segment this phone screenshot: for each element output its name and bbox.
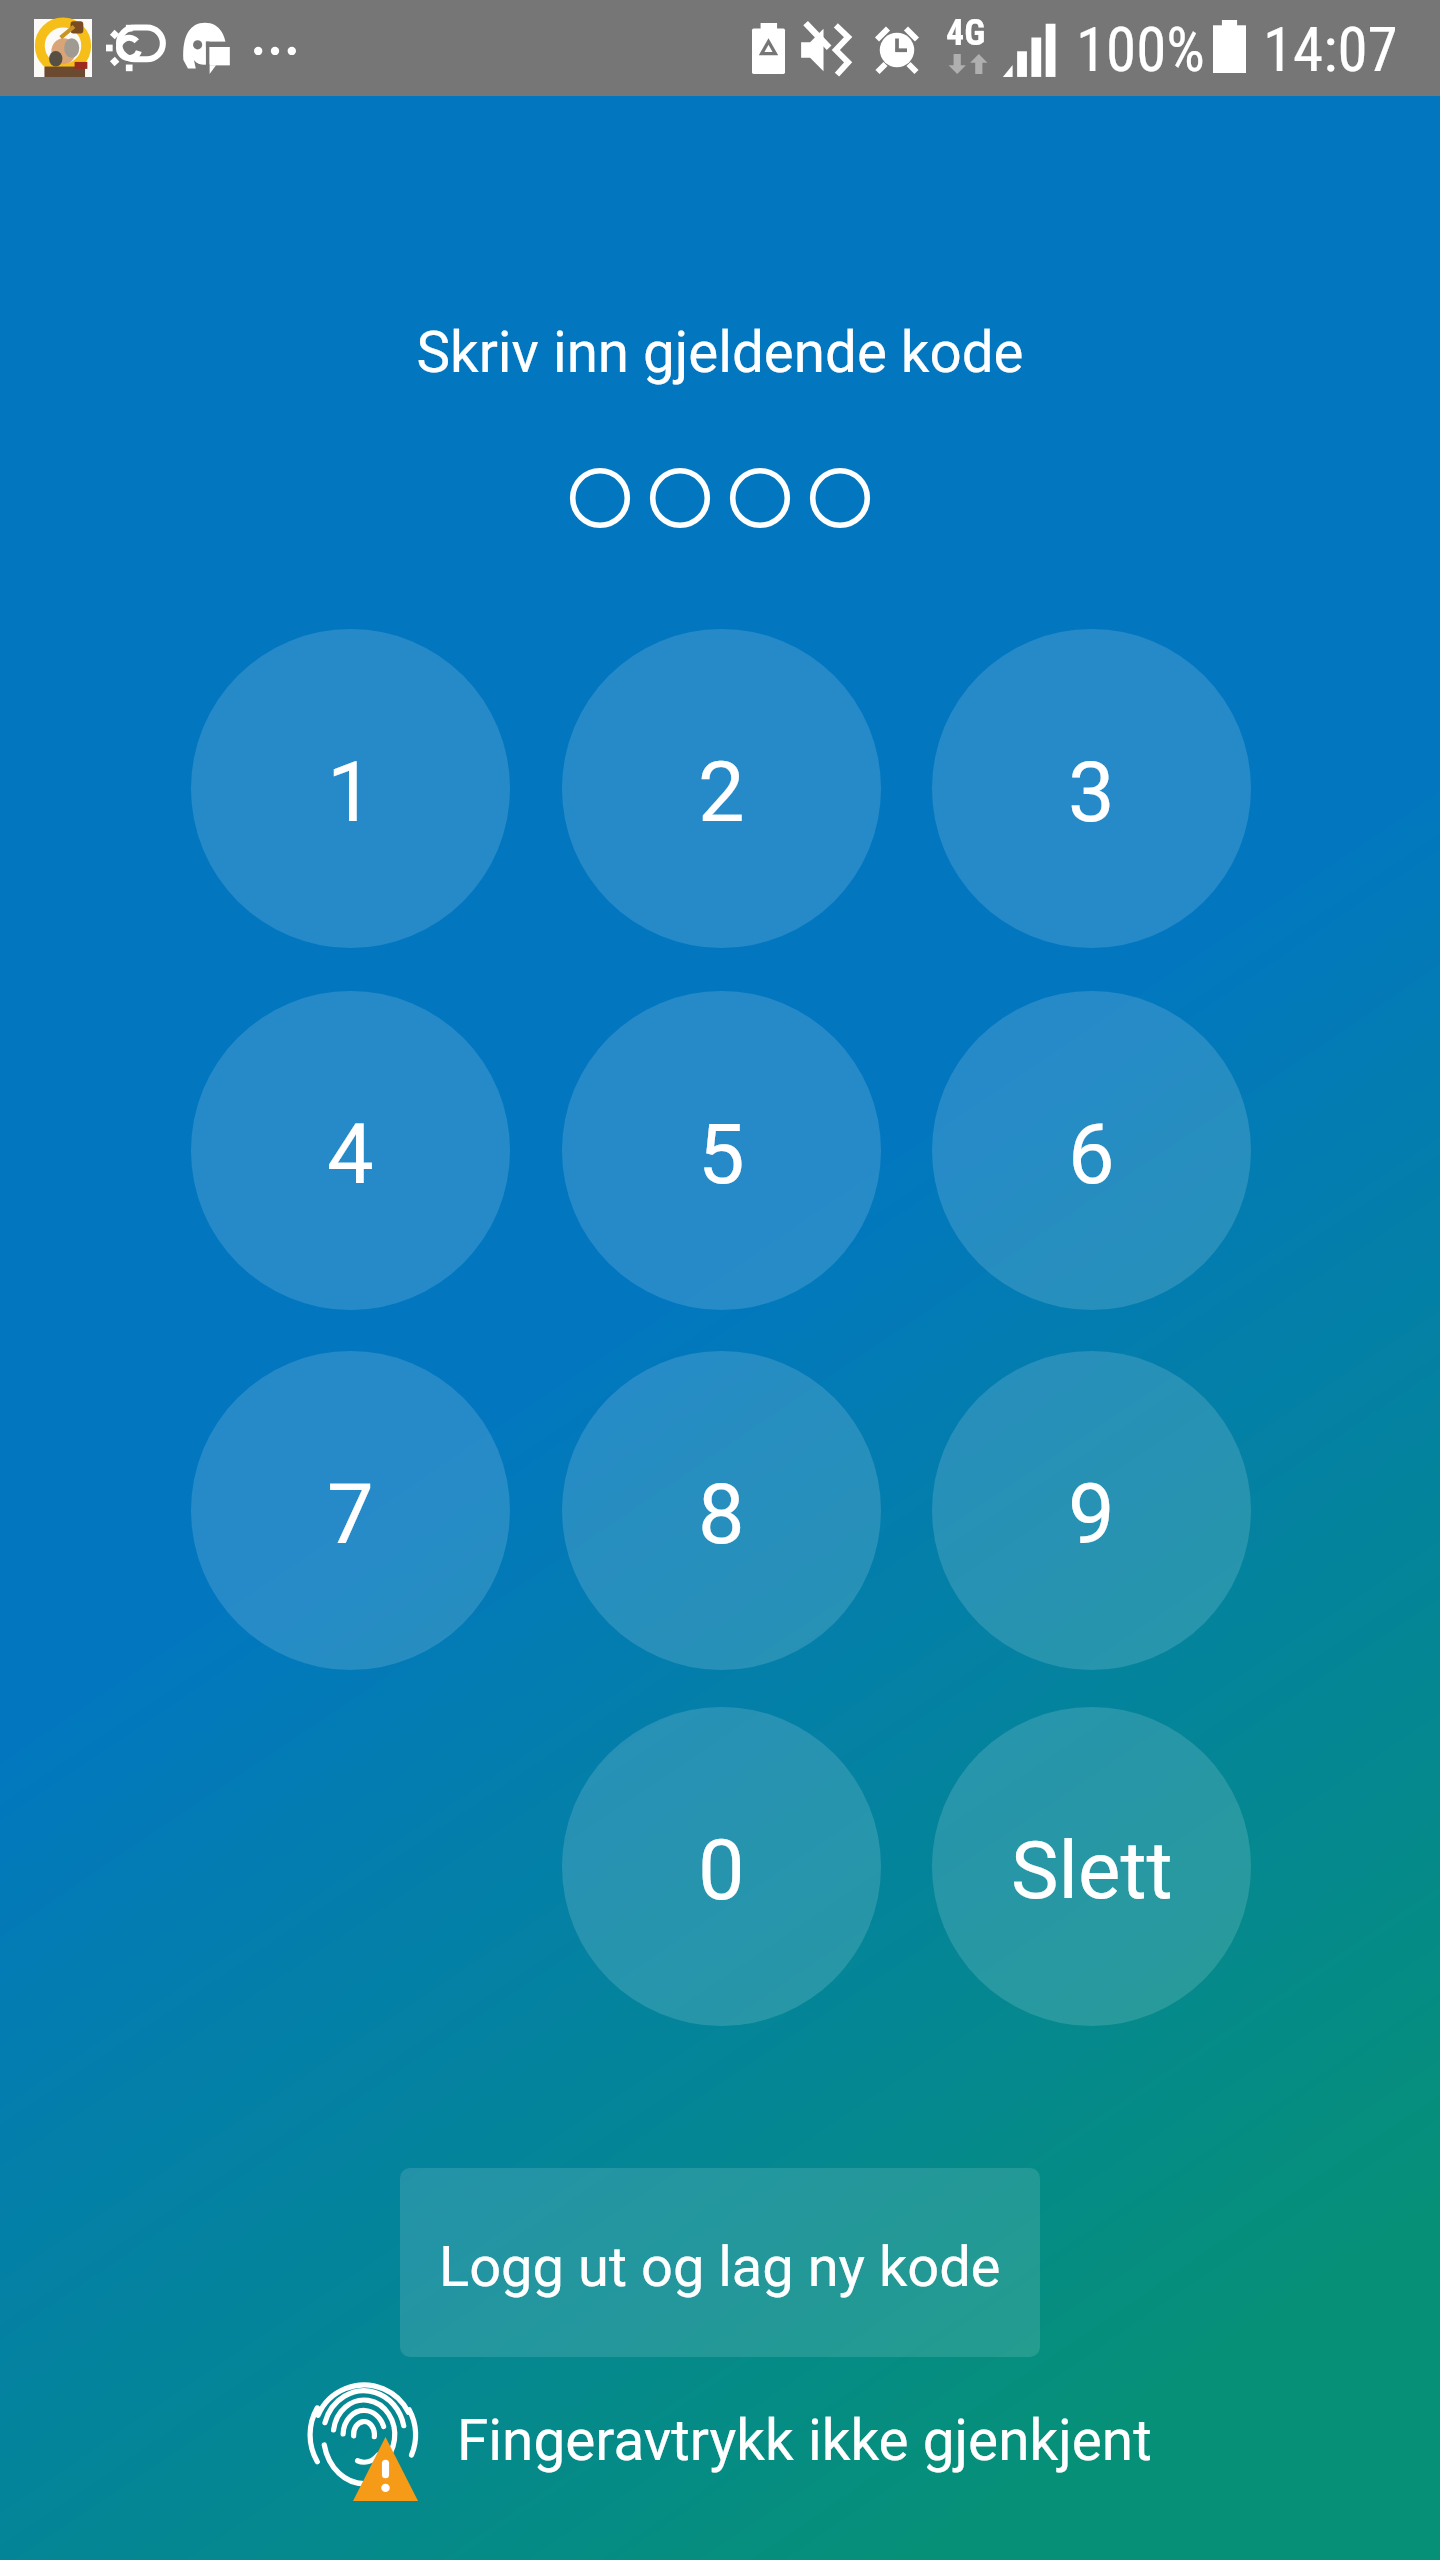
staticText: 14:07	[1263, 14, 1398, 85]
staticText: 4	[327, 1106, 374, 1203]
other: Signal strength	[1002, 24, 1058, 78]
staticText: 7	[327, 1466, 374, 1563]
button[interactable]: Logg ut og lag ny kode	[400, 2168, 1040, 2357]
button[interactable]: 3	[932, 629, 1251, 948]
other: More notifications	[254, 19, 296, 61]
button[interactable]: 5	[562, 991, 881, 1310]
button[interactable]: 0	[562, 1707, 881, 2026]
other: Sound muted, vibrate	[800, 22, 856, 78]
button[interactable]: 2	[562, 629, 881, 948]
staticText: Logg ut og lag ny kode	[439, 2234, 1001, 2300]
staticText: 9	[1068, 1466, 1115, 1563]
staticText: 5	[698, 1106, 745, 1203]
staticText: 8	[698, 1466, 745, 1563]
other: Power saving mode	[752, 23, 785, 74]
button[interactable]: 8	[562, 1351, 881, 1670]
staticText: 2	[698, 744, 745, 841]
other: Weather	[106, 22, 164, 72]
other: Fingerprint not recognised	[306, 2378, 422, 2494]
other: Chat message	[182, 20, 228, 74]
staticText: 0	[698, 1822, 745, 1919]
staticText: 1	[327, 744, 374, 841]
staticText: 4G	[946, 12, 986, 54]
staticText: 6	[1068, 1106, 1115, 1203]
other: Mobile data activity	[950, 54, 986, 74]
staticText: 3	[1068, 744, 1115, 841]
other: Battery full	[1213, 20, 1246, 73]
button[interactable]: 1	[191, 629, 510, 948]
staticText: Slett	[1011, 1824, 1173, 1918]
staticText: 100%	[1076, 14, 1205, 85]
other: Game notification	[34, 19, 92, 77]
staticText: Fingeravtrykk ikke gjenkjent	[457, 2407, 1152, 2473]
button[interactable]: 7	[191, 1351, 510, 1670]
button[interactable]: 9	[932, 1351, 1251, 1670]
staticText: Skriv inn gjeldende kode	[0, 320, 1440, 386]
button[interactable]: Slett	[932, 1707, 1251, 2026]
button[interactable]: 6	[932, 991, 1251, 1310]
button[interactable]: 4	[191, 991, 510, 1310]
other: Alarm set	[872, 25, 922, 75]
